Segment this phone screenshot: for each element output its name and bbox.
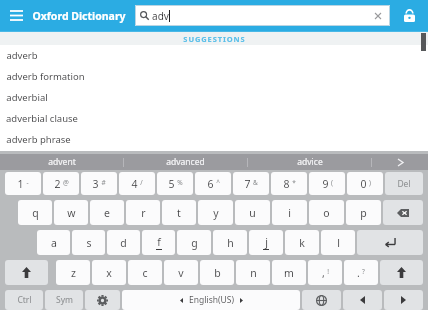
button[interactable]: j	[249, 230, 283, 255]
button[interactable]: l	[321, 230, 355, 255]
staticText: 9	[322, 177, 329, 191]
staticText: )	[369, 178, 371, 187]
button[interactable]: 8	[271, 172, 307, 195]
staticText: @	[63, 178, 69, 187]
staticText: 1	[17, 177, 24, 191]
staticText: p	[360, 206, 367, 220]
staticText: &	[253, 178, 258, 187]
button[interactable]: p	[346, 200, 381, 225]
button[interactable]: Enter	[357, 230, 423, 255]
button[interactable]: r	[126, 200, 160, 225]
button[interactable]: s	[72, 230, 105, 255]
staticText: r	[141, 206, 146, 220]
button[interactable]: 3	[81, 172, 117, 195]
staticText: English(US)	[189, 294, 234, 306]
button[interactable]: g	[177, 230, 211, 255]
button[interactable]: 2	[43, 172, 79, 195]
button[interactable]: m	[272, 260, 306, 285]
staticText: adverb phrase	[6, 133, 71, 146]
button[interactable]: 0	[347, 172, 383, 195]
staticText: Oxford Dictionary	[32, 9, 126, 23]
staticText: s	[86, 236, 92, 250]
button[interactable]: Right	[384, 290, 423, 310]
button[interactable]: adverbial clause	[0, 108, 428, 129]
button[interactable]: o	[309, 200, 344, 225]
button[interactable]: advice	[248, 154, 371, 170]
button[interactable]: Change language	[302, 290, 341, 310]
staticText: 8	[283, 177, 290, 191]
button[interactable]: Delete	[385, 172, 423, 195]
button[interactable]: Menu	[0, 0, 32, 31]
button[interactable]: d	[107, 230, 140, 255]
button[interactable]: f	[142, 230, 175, 255]
button[interactable]: Space	[122, 290, 300, 310]
staticText: 5	[168, 177, 175, 191]
staticText: u	[249, 206, 256, 220]
staticText: o	[323, 206, 330, 220]
button[interactable]: advanced	[124, 154, 247, 170]
button[interactable]: Shift	[5, 260, 48, 285]
button[interactable]: a	[37, 230, 70, 255]
button[interactable]: Backspace	[383, 200, 423, 225]
staticText: advanced	[166, 156, 205, 168]
staticText: %	[177, 178, 183, 187]
button[interactable]: Left	[343, 290, 382, 310]
button[interactable]: k	[285, 230, 319, 255]
button[interactable]: adverbial	[0, 87, 428, 108]
button[interactable]: z	[56, 260, 90, 285]
button[interactable]: .	[344, 260, 378, 285]
button[interactable]: More suggestions	[372, 154, 428, 170]
staticText: SUGGESTIONS	[183, 34, 246, 44]
button[interactable]: 9	[309, 172, 345, 195]
button[interactable]: 6	[195, 172, 231, 195]
button[interactable]: h	[213, 230, 247, 255]
button[interactable]: i	[272, 200, 307, 225]
staticText: x	[106, 266, 112, 280]
button[interactable]: Keyboard settings	[85, 290, 120, 310]
button[interactable]: c	[128, 260, 162, 285]
button[interactable]: adverb phrase	[0, 129, 428, 150]
staticText: *	[292, 178, 296, 187]
button[interactable]: adv	[135, 5, 390, 26]
staticText: i	[288, 206, 291, 220]
staticText: Del	[397, 178, 411, 190]
staticText: adverbial	[6, 91, 48, 104]
button[interactable]: e	[90, 200, 124, 225]
staticText: e	[104, 206, 110, 220]
button[interactable]: v	[164, 260, 198, 285]
button[interactable]: Shift	[380, 260, 423, 285]
staticText: m	[284, 266, 294, 280]
button[interactable]: ,	[308, 260, 342, 285]
button[interactable]: q	[18, 200, 52, 225]
button[interactable]: Sym	[45, 290, 83, 310]
staticText: ?	[362, 267, 365, 276]
button[interactable]: b	[200, 260, 234, 285]
staticText: (	[331, 178, 333, 187]
staticText: adv	[152, 9, 169, 23]
button[interactable]: t	[162, 200, 196, 225]
staticText: t	[177, 206, 181, 220]
button[interactable]: u	[235, 200, 270, 225]
button[interactable]: y	[198, 200, 233, 225]
button[interactable]: Clear text	[371, 9, 385, 23]
button[interactable]: 1	[5, 172, 41, 195]
button[interactable]: x	[92, 260, 126, 285]
staticText: g	[191, 236, 198, 250]
button[interactable]: 4	[119, 172, 155, 195]
button[interactable]: advent	[0, 154, 123, 170]
button[interactable]: 5	[157, 172, 193, 195]
button[interactable]: w	[54, 200, 88, 225]
staticText: adverb formation	[6, 70, 85, 83]
button[interactable]: Lock	[390, 0, 428, 31]
button[interactable]: Ctrl	[5, 290, 43, 310]
staticText: q	[32, 206, 39, 220]
button[interactable]: 7	[233, 172, 269, 195]
staticText: -	[26, 178, 29, 187]
staticText: n	[250, 266, 257, 280]
button[interactable]: adverb formation	[0, 66, 428, 87]
button[interactable]: n	[236, 260, 270, 285]
staticText: Sym	[56, 294, 73, 306]
button[interactable]: adverb	[0, 45, 428, 66]
staticText: a	[51, 236, 57, 250]
staticText: adverbial clause	[6, 112, 78, 125]
